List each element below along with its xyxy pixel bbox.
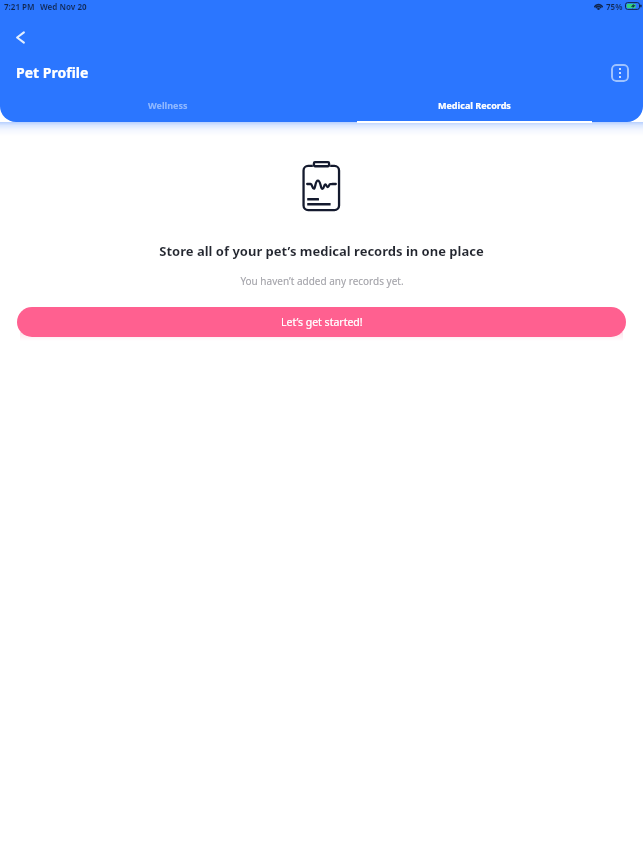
button[interactable]: More options <box>611 64 629 82</box>
staticText: Wed Nov 20 <box>40 1 87 12</box>
staticText: Medical Records <box>438 99 511 111</box>
button[interactable]: Back <box>8 25 32 49</box>
staticText: 75% <box>606 1 623 12</box>
staticText: Wellness <box>148 99 188 111</box>
button[interactable]: Medical Records <box>321 92 628 118</box>
button[interactable]: Wellness <box>15 92 321 118</box>
button[interactable]: Let’s get started! <box>17 307 626 337</box>
staticText: Pet Profile <box>16 63 89 82</box>
staticText: You haven’t added any records yet. <box>240 274 404 288</box>
staticText: Store all of your pet’s medical records … <box>159 242 484 260</box>
staticText: 7:21 PM <box>4 1 35 12</box>
staticText: Let’s get started! <box>281 315 363 329</box>
